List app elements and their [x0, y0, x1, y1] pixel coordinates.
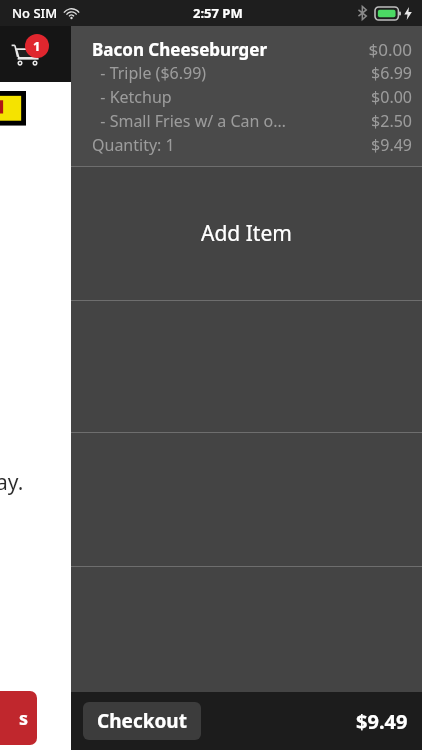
button[interactable]: Bacon Cheeseburger [71, 26, 422, 166]
staticText: Add Item [201, 219, 292, 248]
staticText: - Small Fries w/ a Can o… [92, 110, 371, 132]
staticText: Checkout [97, 708, 187, 734]
staticText: s [19, 706, 29, 731]
staticText: Bacon Cheeseburger [92, 38, 368, 61]
button[interactable]: s [0, 691, 37, 745]
staticText: - Ketchup [92, 86, 371, 108]
button[interactable]: Checkout [83, 702, 201, 740]
button[interactable]: Add Item [71, 167, 422, 300]
staticText: $6.99 [371, 62, 412, 84]
staticText: $2.50 [371, 110, 412, 132]
staticText: 2:57 PM [193, 4, 243, 22]
staticText: 1 [33, 37, 41, 55]
staticText: No SIM [12, 4, 58, 22]
staticText: $0.00 [368, 38, 412, 61]
staticText: ay. [0, 468, 24, 497]
staticText: Quantity: 1 [92, 134, 371, 156]
staticText: $0.00 [371, 86, 412, 108]
staticText: $9.49 [356, 708, 408, 735]
staticText: - Triple ($6.99) [92, 62, 371, 84]
button[interactable]: Cart [2, 30, 50, 78]
staticText: $9.49 [371, 134, 412, 156]
